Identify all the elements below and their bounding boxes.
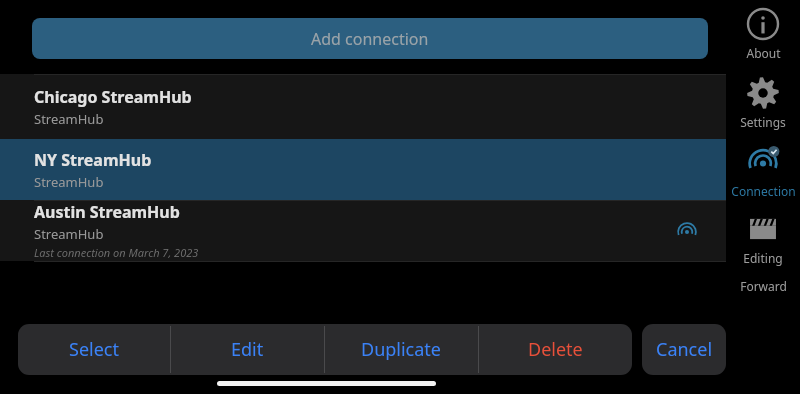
button[interactable]: Cancel [642, 324, 726, 375]
staticText: StreamHub [34, 173, 104, 191]
staticText: Forward [740, 278, 787, 294]
staticText: Austin StreamHub [34, 201, 180, 223]
staticText: Edit [231, 337, 264, 362]
button[interactable]: Duplicate [325, 324, 478, 375]
button[interactable]: Settings [726, 75, 800, 130]
staticText: Connection [731, 183, 796, 199]
staticText: Editing [743, 250, 783, 266]
button[interactable]: Connection [726, 144, 800, 199]
button[interactable]: Add connection [32, 18, 708, 59]
staticText: Delete [528, 337, 583, 362]
staticText: Settings [740, 114, 786, 130]
staticText: NY StreamHub [34, 149, 152, 171]
button[interactable]: Editing [726, 211, 800, 266]
staticText: Add connection [311, 28, 429, 50]
button[interactable]: NY StreamHub [0, 139, 726, 200]
button[interactable]: Forward [726, 278, 800, 294]
button[interactable]: Connect [670, 214, 704, 248]
button[interactable]: Edit [171, 324, 324, 375]
staticText: Last connection on March 7, 2023 [34, 245, 199, 260]
staticText: Duplicate [361, 337, 442, 362]
staticText: Chicago StreamHub [34, 86, 192, 108]
button[interactable]: Delete [479, 324, 632, 375]
button[interactable]: Austin StreamHub [0, 200, 726, 261]
staticText: About [746, 45, 781, 61]
button[interactable]: About [726, 6, 800, 61]
staticText: Select [69, 337, 119, 362]
button[interactable]: Chicago StreamHub [0, 74, 726, 139]
staticText: Cancel [656, 337, 713, 362]
button[interactable]: Select [18, 324, 170, 375]
staticText: StreamHub [34, 225, 104, 243]
staticText: StreamHub [34, 110, 104, 128]
